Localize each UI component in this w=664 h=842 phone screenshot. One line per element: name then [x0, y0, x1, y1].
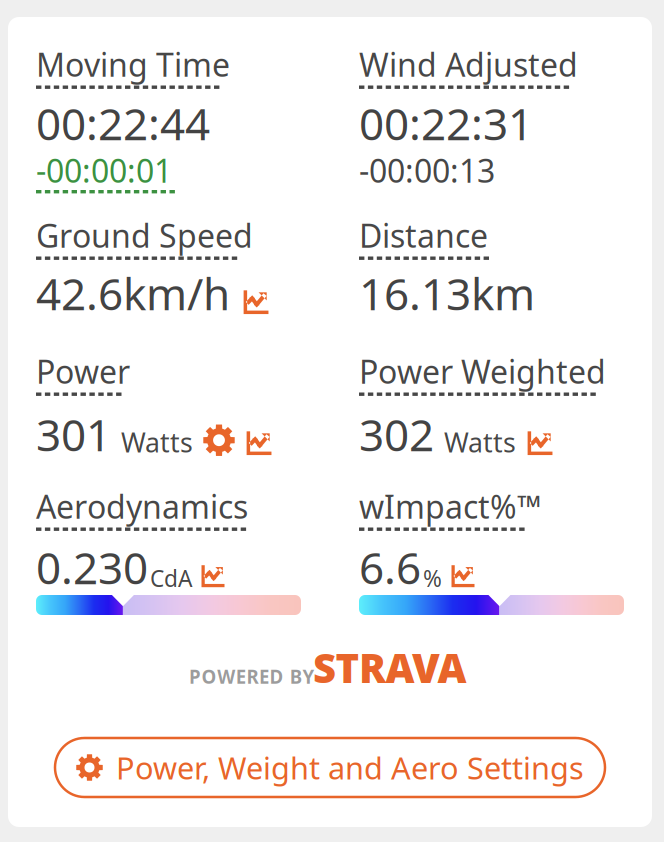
staticText: %	[423, 563, 442, 593]
button[interactable]: Ground speed chart	[242, 289, 269, 316]
staticText: Aerodynamics	[36, 485, 248, 527]
staticText: 6.6	[359, 538, 421, 596]
staticText: 301	[36, 405, 111, 463]
staticText: 16.13km	[359, 264, 535, 322]
staticText: 00:22:44	[36, 94, 210, 152]
staticText: 0.230	[36, 538, 148, 596]
button[interactable]: Wind impact chart	[450, 564, 475, 589]
staticText: 302	[359, 405, 434, 463]
staticText: Watts	[444, 424, 516, 460]
staticText: CdA	[150, 563, 192, 593]
staticText: POWERED BY	[189, 664, 314, 689]
staticText: 00:22:31	[359, 94, 533, 152]
staticText: Distance	[359, 214, 488, 256]
staticText: STRAVA	[313, 641, 466, 694]
staticText: Ground Speed	[36, 214, 253, 256]
staticText: -00:00:01	[36, 149, 172, 191]
staticText: Moving Time	[36, 43, 230, 85]
button[interactable]: Weighted power chart	[526, 430, 553, 457]
staticText: -00:00:13	[359, 149, 495, 191]
staticText: Power, Weight and Aero Settings	[116, 747, 584, 788]
button[interactable]: Aerodynamics chart	[200, 564, 225, 589]
staticText: Power	[36, 350, 130, 392]
staticText: 42.6km/h	[36, 264, 230, 322]
staticText: Power Weighted	[359, 350, 606, 392]
button[interactable]: Power chart	[245, 430, 272, 457]
staticText: Wind Adjusted	[359, 43, 578, 85]
staticText: Watts	[121, 424, 193, 460]
button[interactable]: Power settings	[203, 424, 235, 456]
staticText: wImpact%™	[359, 485, 542, 527]
button[interactable]: Power, Weight and Aero Settings	[55, 738, 605, 797]
